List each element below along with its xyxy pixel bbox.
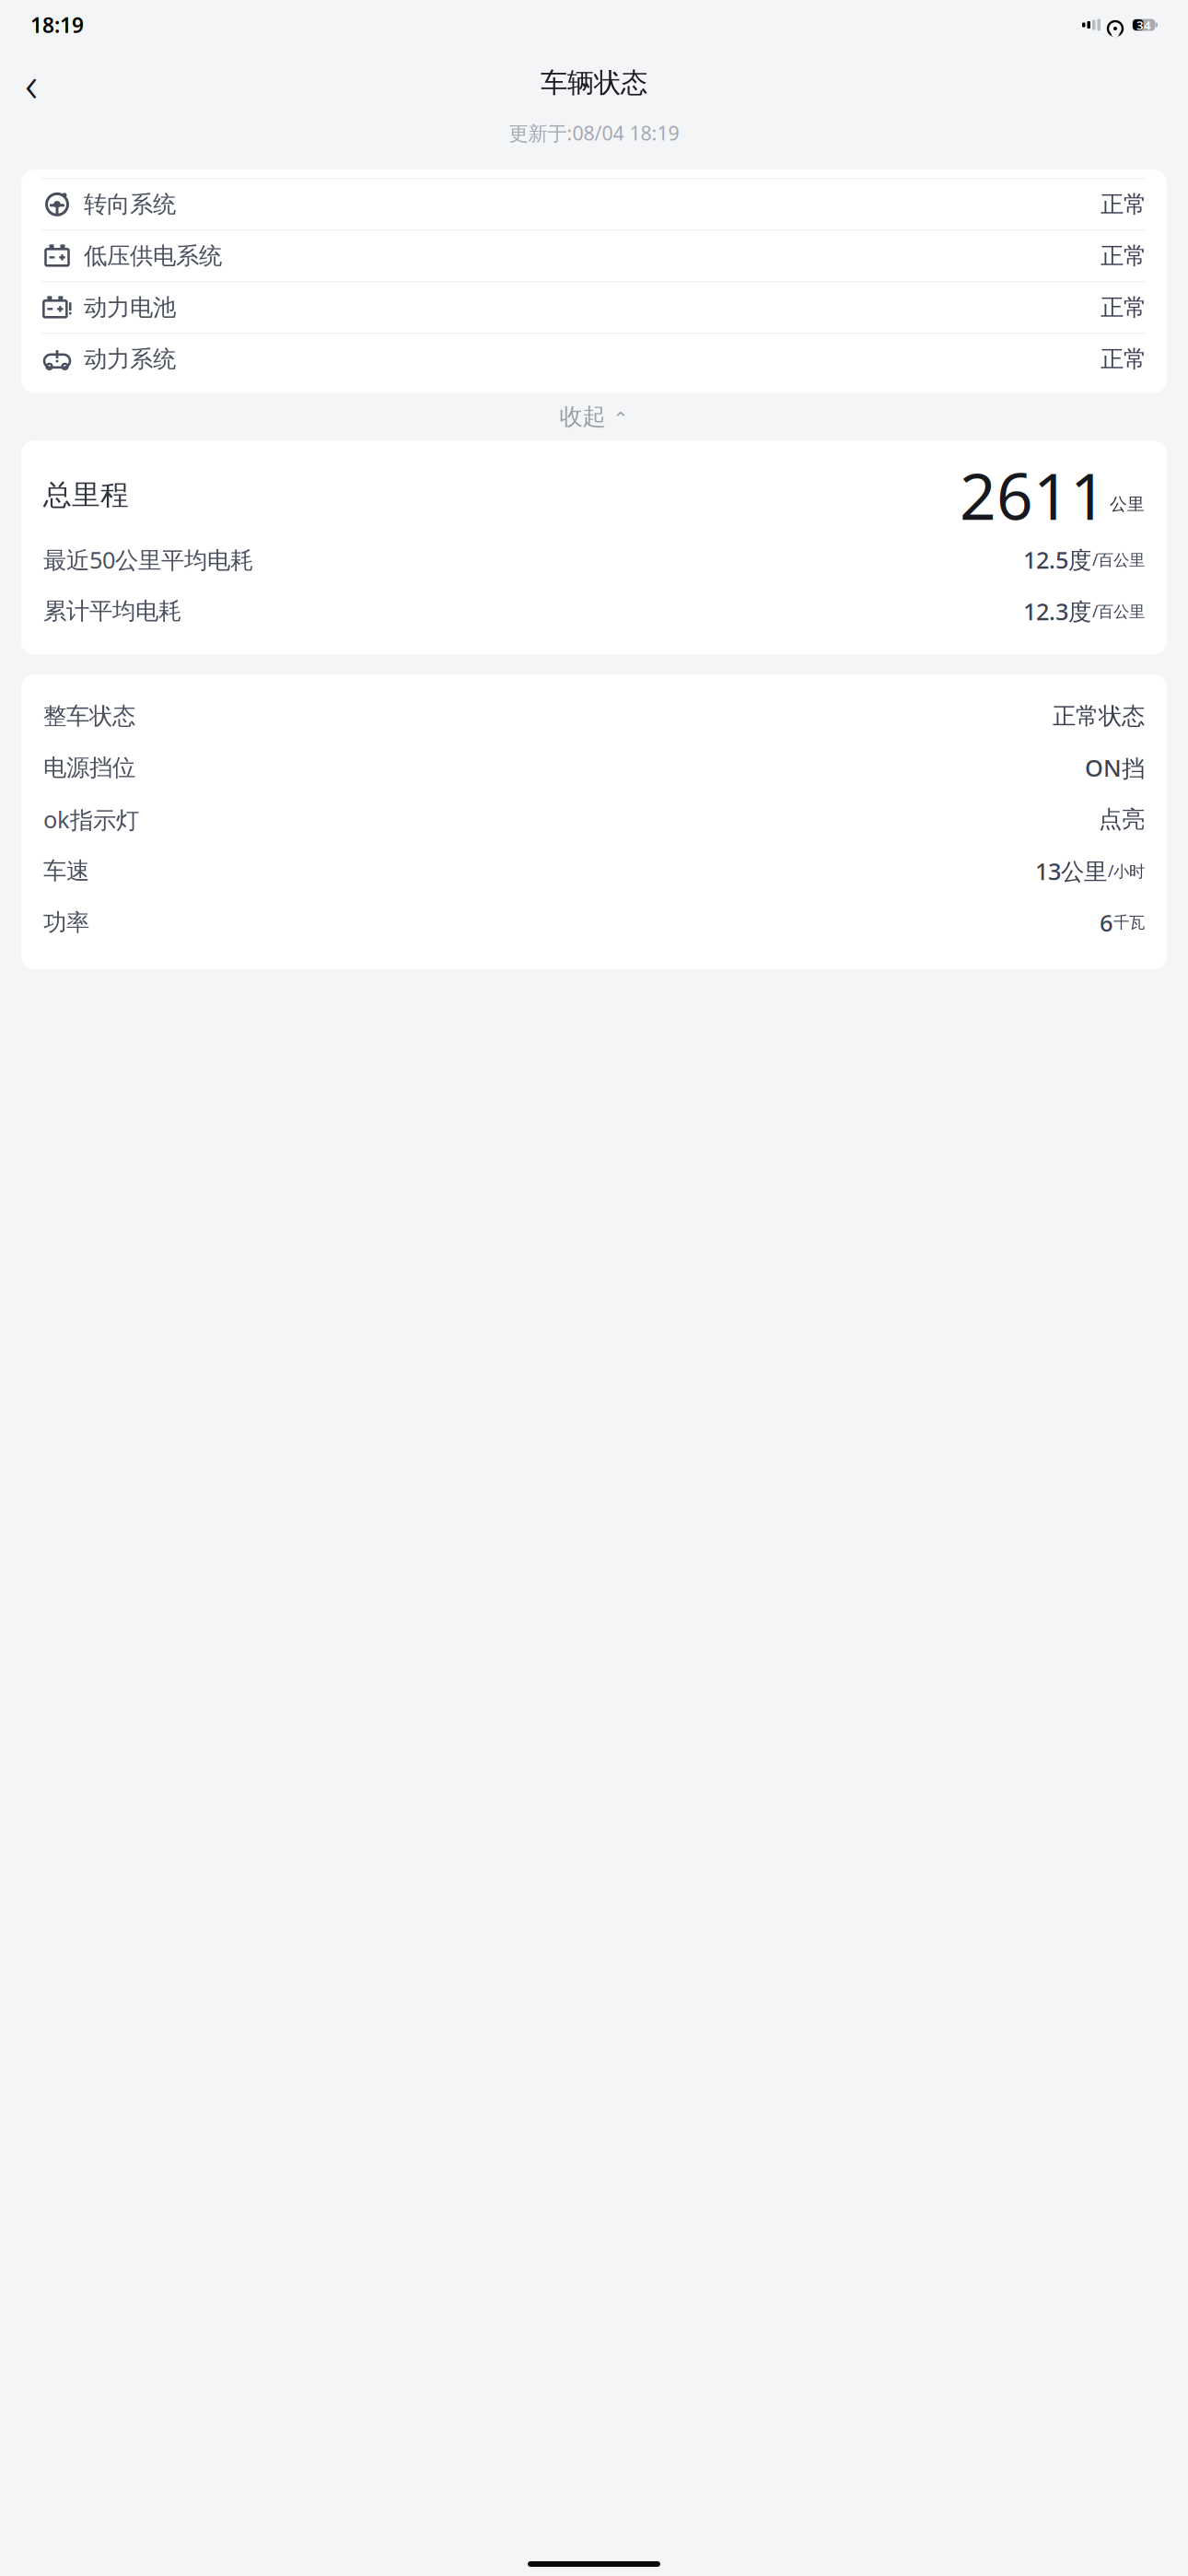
staticText: 电源挡位 [43,753,135,782]
staticText: 6 [1100,907,1112,938]
staticText: /小时 [1108,860,1145,882]
staticText: 低压供电系统 [84,242,222,270]
button[interactable]: 动力系统 [32,334,1156,384]
staticText: ON挡 [1085,752,1145,783]
staticText: 13公里 [1035,855,1107,886]
staticText: 功率 [43,908,89,937]
staticText: 收起 [559,402,606,431]
staticText: 千瓦 [1113,913,1145,932]
staticText: ⌃ [613,408,629,429]
staticText: 34 [1136,17,1151,33]
button[interactable]: 转向系统 [32,179,1156,230]
staticText: 正常 [1101,242,1147,270]
staticText: 正常 [1101,190,1147,219]
button[interactable]: 动力电池 [32,282,1156,333]
button[interactable]: 低压供电系统 [32,231,1156,281]
staticText: 整车状态 [43,702,135,731]
staticText: 总里程 [43,478,129,512]
staticText: 点亮 [1099,805,1145,834]
staticText: 2611 [960,453,1107,537]
staticText: 更新于:08/04 18:19 [509,120,679,146]
staticText: 动力电池 [84,293,176,322]
button[interactable]: 收起 [537,393,651,441]
staticText: ok指示灯 [43,804,139,835]
staticText: 车辆状态 [541,66,647,100]
staticText: ‹ [25,50,38,116]
staticText: /百公里 [1092,601,1145,622]
staticText: 正常 [1101,293,1147,322]
staticText: 转向系统 [84,190,176,219]
staticText: 公里 [1110,494,1145,515]
staticText: 正常 [1101,345,1147,374]
staticText: 12.5度 [1023,544,1091,575]
staticText: 18:19 [30,11,84,39]
staticText: 动力系统 [84,345,176,374]
button[interactable]: 返回 [11,63,52,103]
staticText: 最近50公里平均电耗 [43,544,253,575]
staticText: /百公里 [1092,549,1145,570]
staticText: 正常状态 [1053,702,1145,731]
staticText: 累计平均电耗 [43,597,181,625]
staticText: 车速 [43,857,89,885]
staticText: 12.3度 [1023,596,1091,627]
